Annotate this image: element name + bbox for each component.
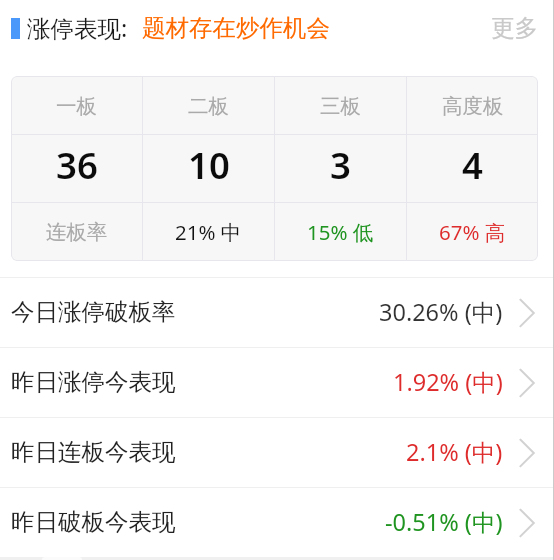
staticText: 4 xyxy=(462,140,483,190)
staticText: 21% 中 xyxy=(175,218,242,246)
staticText: 昨日连板今表现 xyxy=(11,437,176,467)
staticText: 36 xyxy=(56,140,98,190)
staticText: 昨日涨停今表现 xyxy=(11,367,176,397)
other: 查看昨日涨停今表现 详情 xyxy=(519,368,535,398)
other: 查看昨日破板今表现 详情 xyxy=(519,508,535,538)
staticText: 一板 xyxy=(56,93,97,119)
staticText: 67% 高 xyxy=(439,218,506,246)
staticText: 15% 低 xyxy=(307,218,374,246)
staticText: 三板 xyxy=(320,93,361,119)
button[interactable]: 昨日涨停今表现 xyxy=(0,348,554,417)
staticText: 10 xyxy=(188,140,230,190)
staticText: 30.26% (中) xyxy=(379,296,503,328)
staticText: 更多 xyxy=(491,13,538,43)
button[interactable]: 更多 xyxy=(475,0,554,56)
staticText: 连板率 xyxy=(46,219,108,245)
staticText: 涨停表现: xyxy=(27,12,128,44)
button[interactable]: 今日涨停破板率 xyxy=(0,278,554,347)
other: 查看昨日连板今表现 详情 xyxy=(519,438,535,468)
staticText: 题材存在炒作机会 xyxy=(142,13,330,43)
staticText: 今日涨停破板率 xyxy=(11,297,176,327)
staticText: 3 xyxy=(330,140,351,190)
other: 查看今日涨停破板率 详情 xyxy=(519,298,535,328)
staticText: 2.1% (中) xyxy=(406,436,503,468)
button[interactable]: 昨日破板今表现 xyxy=(0,488,554,557)
staticText: 二板 xyxy=(188,93,229,119)
staticText: 高度板 xyxy=(442,93,504,119)
staticText: 昨日破板今表现 xyxy=(11,507,176,537)
staticText: -0.51% (中) xyxy=(385,506,503,538)
button[interactable]: 昨日连板今表现 xyxy=(0,418,554,487)
staticText: 1.92% (中) xyxy=(393,366,503,398)
